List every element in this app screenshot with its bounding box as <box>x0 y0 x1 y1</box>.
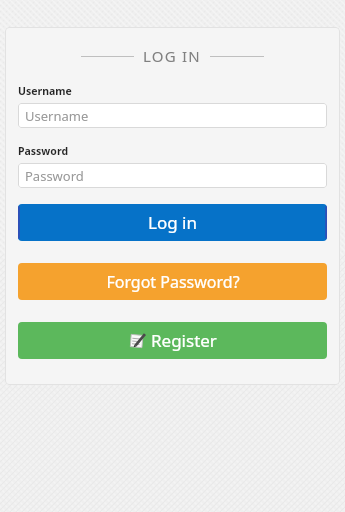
button[interactable]: Forgot Password? <box>18 263 327 300</box>
button[interactable]: Log in <box>18 204 327 241</box>
staticText: LOG IN <box>143 46 201 66</box>
staticText: Password <box>25 167 84 185</box>
staticText: Register <box>151 329 217 352</box>
staticText: Password <box>18 144 69 158</box>
button[interactable]: Username <box>18 103 327 128</box>
staticText: Forgot Password? <box>106 271 240 293</box>
staticText: Username <box>18 84 72 98</box>
other: Register <box>129 332 146 349</box>
button[interactable]: Password <box>18 163 327 188</box>
staticText: Username <box>25 107 89 125</box>
button[interactable]: Register <box>18 322 327 359</box>
staticText: Log in <box>148 211 197 234</box>
